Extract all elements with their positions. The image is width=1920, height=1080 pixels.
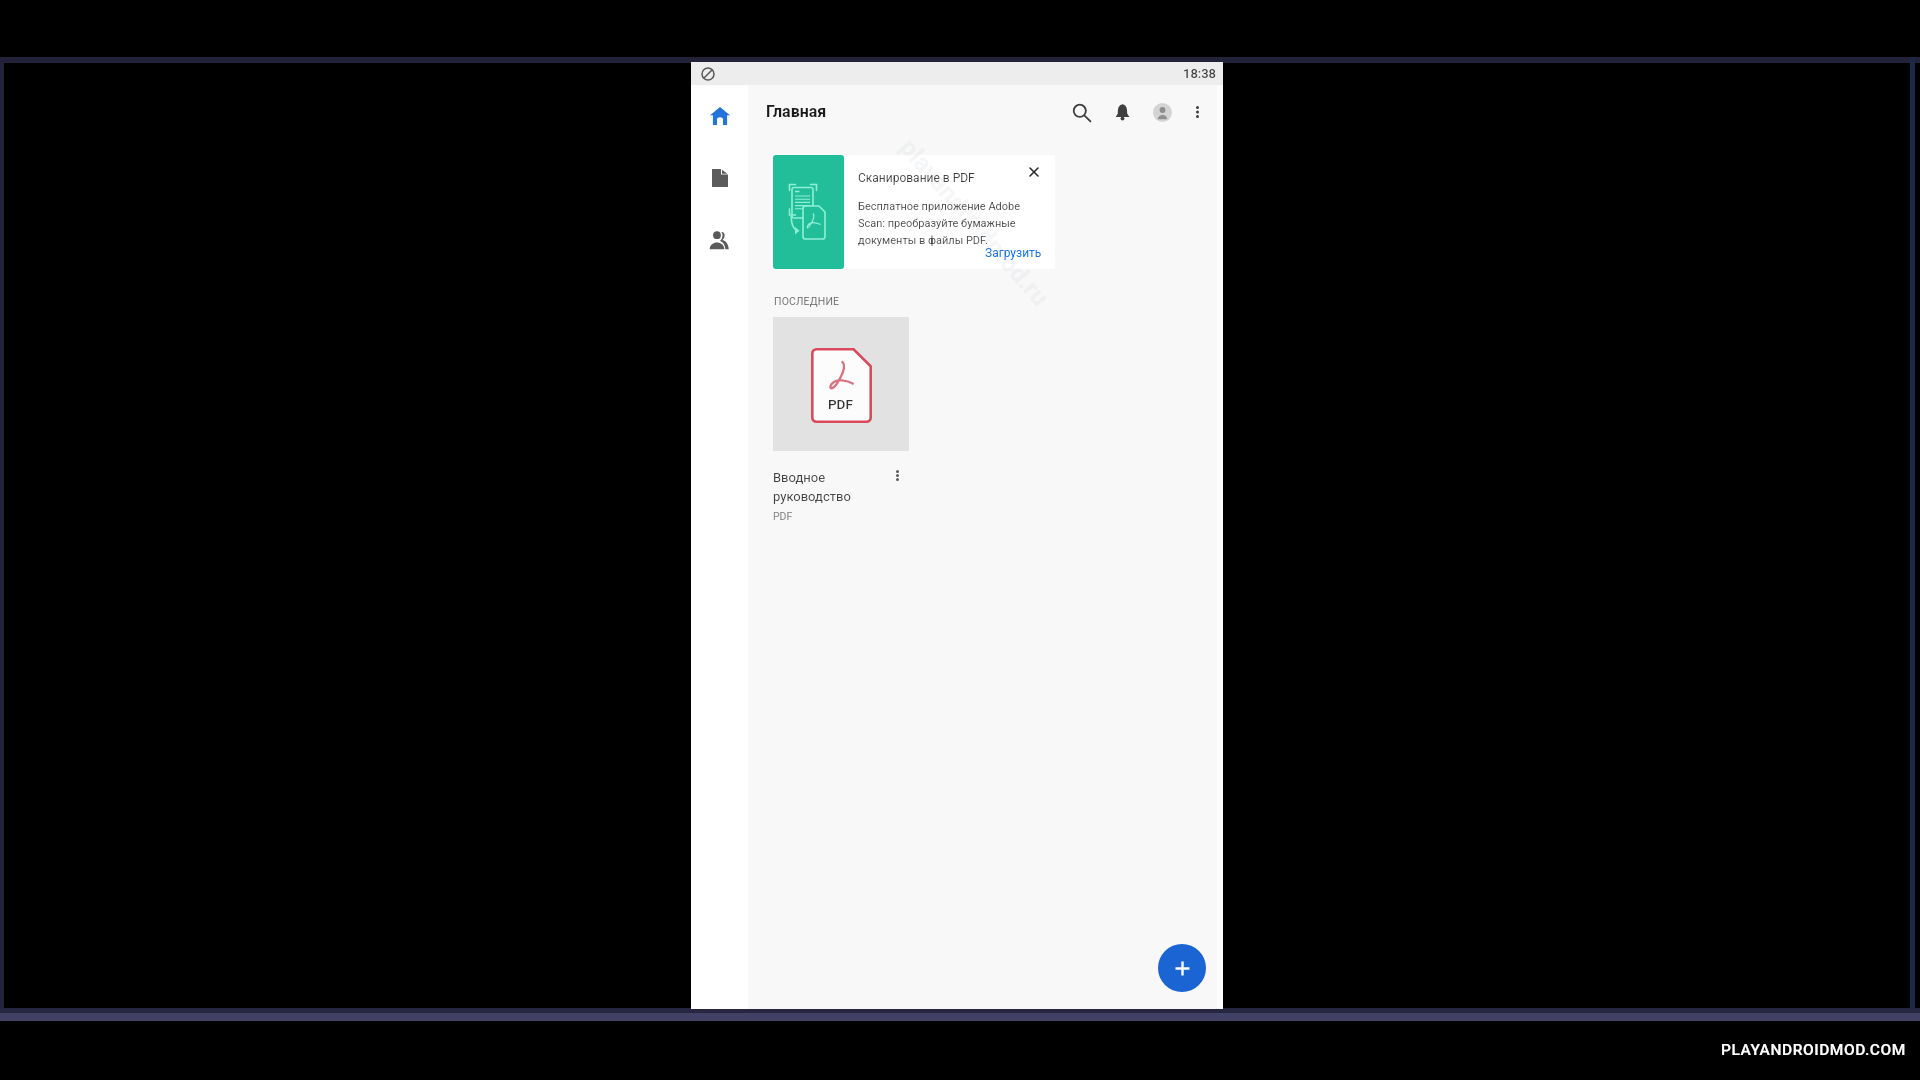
button[interactable]: Shared bbox=[697, 218, 742, 262]
staticText: ПОСЛЕДНИЕ bbox=[774, 295, 840, 307]
button[interactable]: Close bbox=[1023, 161, 1045, 183]
button[interactable]: More options bbox=[1182, 97, 1212, 127]
staticText: Загрузить bbox=[985, 246, 1042, 260]
button[interactable]: Account bbox=[1144, 94, 1180, 130]
button[interactable]: PDF bbox=[773, 317, 909, 498]
staticText: Сканирование в PDF bbox=[858, 171, 975, 185]
button[interactable]: Загрузить bbox=[981, 244, 1046, 262]
staticText: Главная bbox=[766, 102, 827, 121]
staticText: PDF bbox=[828, 396, 853, 412]
button[interactable]: Home bbox=[697, 94, 742, 138]
staticText: 18:38 bbox=[1183, 66, 1216, 81]
button[interactable] bbox=[773, 155, 844, 269]
button[interactable]: No SIM bbox=[699, 65, 717, 83]
staticText: Вводное руководство bbox=[773, 470, 877, 505]
staticText: Бесплатное приложение Adobe Scan: преобр… bbox=[858, 200, 1044, 247]
button[interactable]: Create bbox=[1158, 944, 1206, 992]
button[interactable]: Files bbox=[697, 156, 742, 200]
staticText: playandroidmod.ru bbox=[894, 133, 1055, 312]
button[interactable]: Notifications bbox=[1104, 94, 1140, 130]
staticText: PLAYANDROIDMOD.COM bbox=[1721, 1041, 1906, 1059]
button[interactable]: Search bbox=[1063, 94, 1099, 130]
staticText: PDF bbox=[773, 510, 793, 522]
button[interactable]: Item options bbox=[887, 465, 907, 485]
